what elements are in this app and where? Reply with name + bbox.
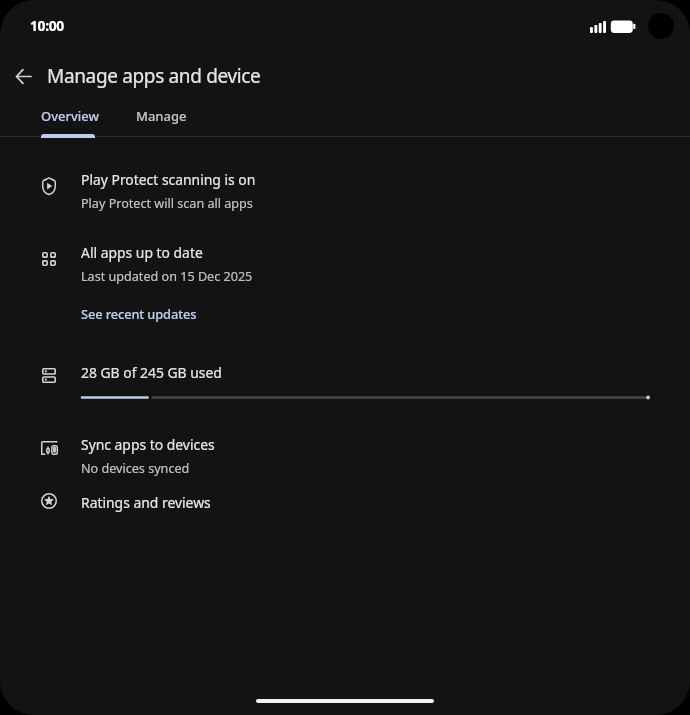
- staticText: 10:00: [30, 16, 64, 35]
- button[interactable]: 28 GB of 245 GB used: [0, 351, 690, 409]
- button[interactable]: Overview: [23, 98, 117, 133]
- button[interactable]: Ratings and reviews: [0, 481, 690, 525]
- button[interactable]: Back: [3, 56, 43, 96]
- staticText: Ratings and reviews: [81, 493, 211, 512]
- staticText: Play Protect will scan all apps: [81, 195, 253, 212]
- button[interactable]: See recent updates: [69, 299, 209, 328]
- staticText: Sync apps to devices: [81, 435, 215, 454]
- staticText: 28 GB of 245 GB used: [81, 363, 222, 382]
- staticText: Overview: [41, 107, 100, 125]
- button[interactable]: Play Protect scanning is on: [0, 158, 690, 214]
- staticText: No devices synced: [81, 460, 190, 477]
- staticText: Last updated on 15 Dec 2025: [81, 268, 253, 285]
- staticText: Manage: [136, 107, 187, 125]
- button[interactable]: Sync apps to devices: [0, 423, 690, 479]
- staticText: All apps up to date: [81, 243, 203, 262]
- staticText: See recent updates: [81, 305, 197, 322]
- staticText: Play Protect scanning is on: [81, 170, 256, 189]
- staticText: Manage apps and device: [47, 63, 261, 89]
- button[interactable]: All apps up to date: [0, 231, 690, 287]
- button[interactable]: Manage: [117, 98, 206, 133]
